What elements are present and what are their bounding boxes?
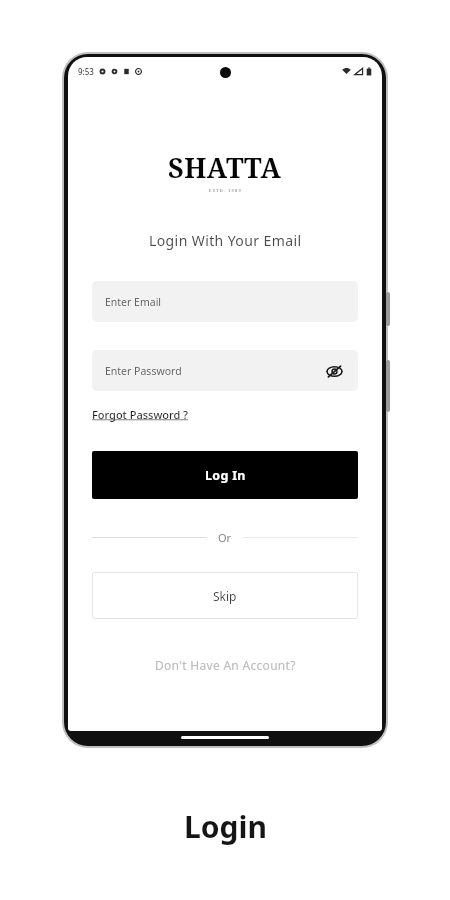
button[interactable]: Don't Have An Account? [151,653,300,677]
staticText: Don't Have An Account? [155,657,296,673]
staticText: Enter Password [105,364,182,378]
button[interactable]: Show password [323,360,345,382]
button[interactable]: Enter Email [92,281,358,322]
staticText: Enter Email [105,295,162,309]
staticText: Or [218,530,232,545]
staticText: Login [184,806,267,847]
staticText: Skip [213,588,237,604]
staticText: Forgot Password ? [92,407,189,422]
staticText: 9:53 [78,66,94,77]
staticText: SHATTA [168,149,282,186]
button[interactable]: Skip [92,572,358,619]
staticText: Log In [205,467,246,484]
staticText: Login With Your Email [149,231,302,250]
button[interactable]: Forgot Password ? [92,405,189,424]
staticText: ESTD. 1989 [209,188,242,193]
button[interactable]: Log In [92,451,358,499]
button[interactable]: Enter Password [92,350,358,391]
